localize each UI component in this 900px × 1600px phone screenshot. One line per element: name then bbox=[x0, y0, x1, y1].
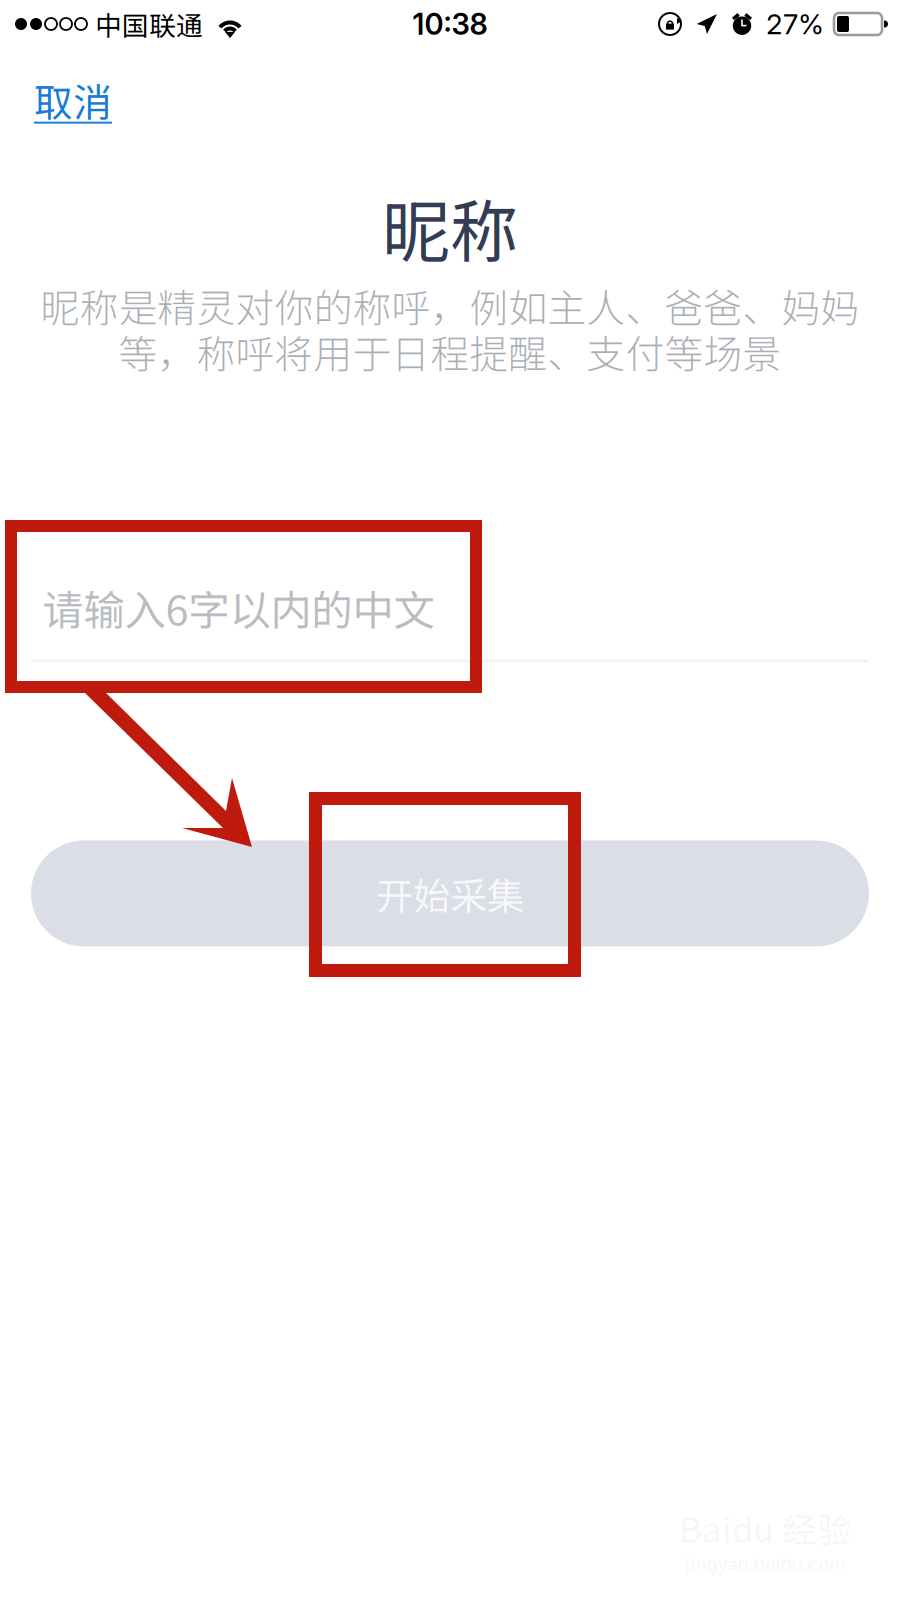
staticText: 等，称呼将用于日程提醒、支付等场景 bbox=[118, 323, 781, 379]
staticText: 请输入6字以内的中文 bbox=[42, 577, 434, 637]
staticText: Baidu 经验 bbox=[679, 1502, 852, 1552]
button[interactable]: 开始采集 bbox=[31, 840, 869, 946]
staticText: 10:38 bbox=[412, 6, 487, 42]
staticText: 中国联通 bbox=[95, 5, 203, 43]
staticText: 27% bbox=[766, 7, 824, 41]
staticText: 开始采集 bbox=[376, 866, 524, 920]
staticText: 昵称是精灵对你的称呼，例如主人、爸爸、妈妈 bbox=[40, 277, 859, 333]
staticText: 取消 bbox=[34, 72, 112, 128]
button[interactable]: 取消 bbox=[20, 60, 126, 140]
staticText: 昵称 bbox=[382, 178, 518, 276]
